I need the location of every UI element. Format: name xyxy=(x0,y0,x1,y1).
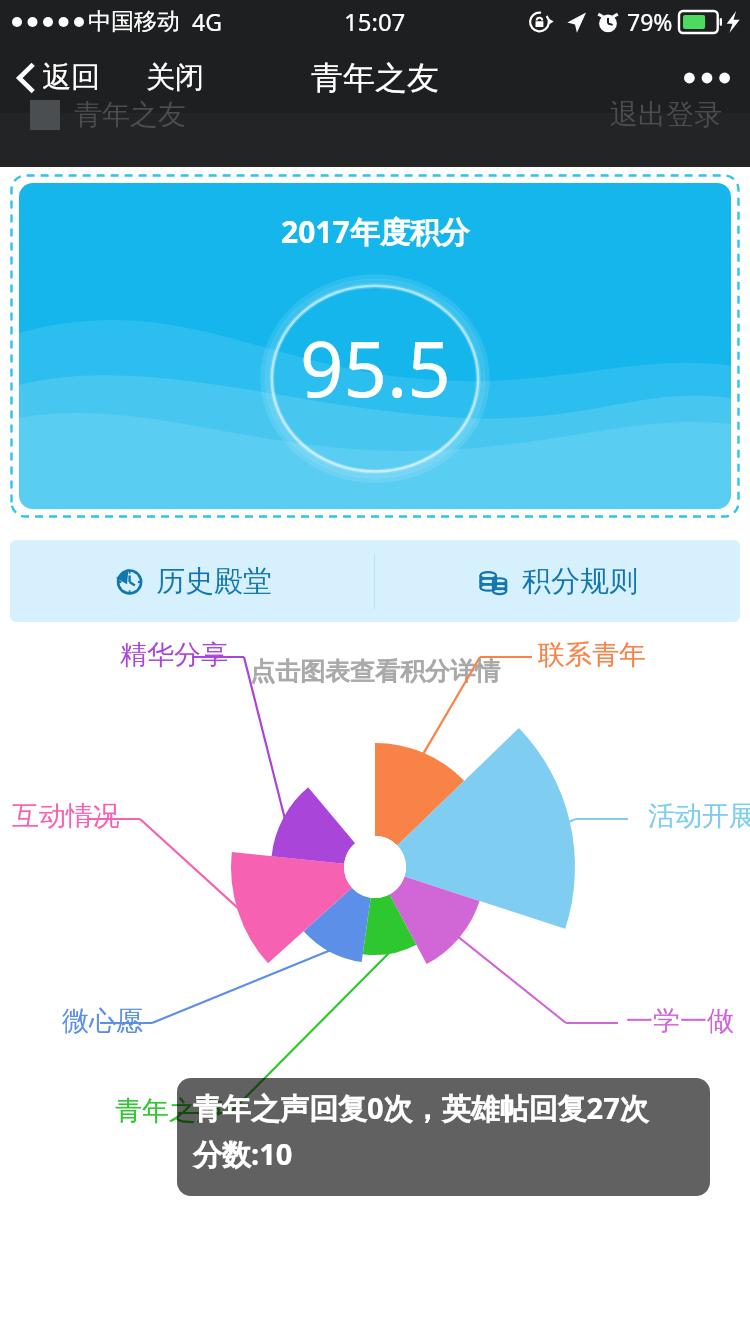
button[interactable]: 积分规则 xyxy=(375,540,740,622)
staticText: 历史殿堂 xyxy=(156,563,272,600)
staticText: 微心愿 xyxy=(62,1004,143,1038)
button[interactable]: 精华分享 xyxy=(118,636,230,674)
staticText: 互动情况 xyxy=(12,799,120,833)
staticText: 精华分享 xyxy=(120,638,228,672)
button[interactable]: 返回 xyxy=(0,53,106,102)
button[interactable]: 互动情况 xyxy=(10,797,122,835)
button[interactable]: 微心愿 xyxy=(60,1002,145,1040)
staticText: 活动开展 xyxy=(648,799,750,833)
staticText: 中国移动 xyxy=(88,7,180,36)
staticText: 关闭 xyxy=(146,59,204,96)
staticText: 分数:10 xyxy=(193,1134,293,1174)
staticText: 2017年度积分 xyxy=(281,211,470,252)
staticText: 联系青年 xyxy=(538,638,646,672)
button[interactable]: 一学一做 xyxy=(624,1002,736,1040)
staticText: 青年之声 xyxy=(115,1094,223,1128)
button[interactable]: 青年之声 xyxy=(113,1092,225,1130)
button[interactable]: 历史殿堂 xyxy=(10,540,374,622)
staticText: 退出登录 xyxy=(610,97,722,132)
staticText: 青年之友 xyxy=(74,97,186,132)
staticText: 4G xyxy=(192,6,222,37)
button[interactable]: 联系青年 xyxy=(536,636,648,674)
button[interactable]: 2017年度积分 xyxy=(19,183,731,509)
button[interactable]: 青年之声回复0次，英雄帖回复27次 xyxy=(177,1078,710,1196)
staticText: 79% xyxy=(627,6,673,37)
button[interactable]: 关闭 xyxy=(140,51,210,104)
staticText: 青年之声回复0次，英雄帖回复27次 xyxy=(193,1088,649,1128)
staticText: 青年之友 xyxy=(311,58,439,98)
staticText: 15:07 xyxy=(344,5,406,38)
button[interactable]: 活动开展 xyxy=(646,797,750,835)
button[interactable]: 更多 xyxy=(664,54,750,102)
staticText: 积分规则 xyxy=(522,563,638,600)
staticText: 一学一做 xyxy=(626,1004,734,1038)
other: 返回 xyxy=(16,61,36,95)
staticText: 返回 xyxy=(42,59,100,96)
staticText: 95.5 xyxy=(300,316,451,420)
staticText: 点击图表查看积分详情 xyxy=(0,656,750,687)
